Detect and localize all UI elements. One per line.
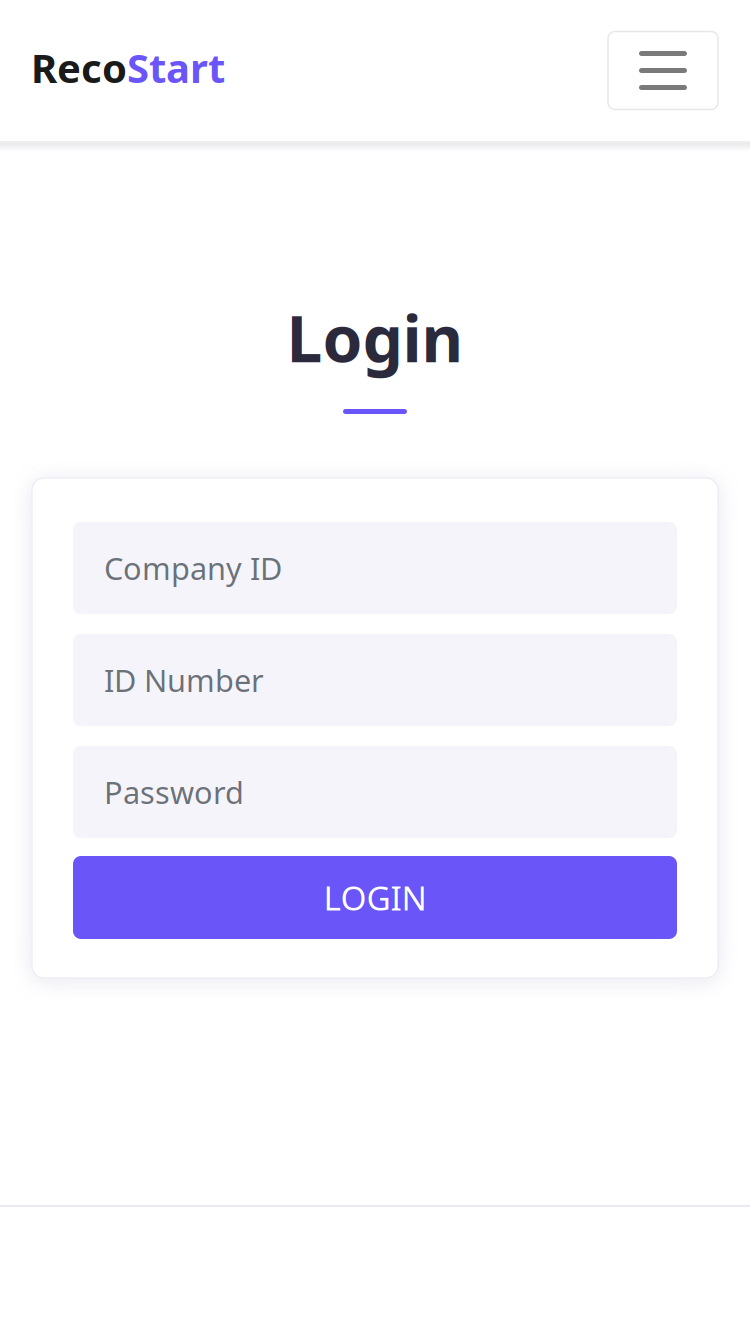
staticText: Start xyxy=(127,41,225,94)
staticText: Login xyxy=(286,295,463,380)
staticText: LOGIN xyxy=(323,875,426,920)
button[interactable]: LOGIN xyxy=(73,856,677,939)
button[interactable]: Password xyxy=(73,746,677,838)
staticText: Password xyxy=(104,772,244,812)
button[interactable]: Company ID xyxy=(73,522,677,614)
button[interactable]: Menu xyxy=(608,31,718,109)
staticText: Company ID xyxy=(104,548,282,588)
button[interactable]: ID Number xyxy=(73,634,677,726)
staticText: Reco xyxy=(31,41,127,94)
staticText: ID Number xyxy=(104,660,264,700)
